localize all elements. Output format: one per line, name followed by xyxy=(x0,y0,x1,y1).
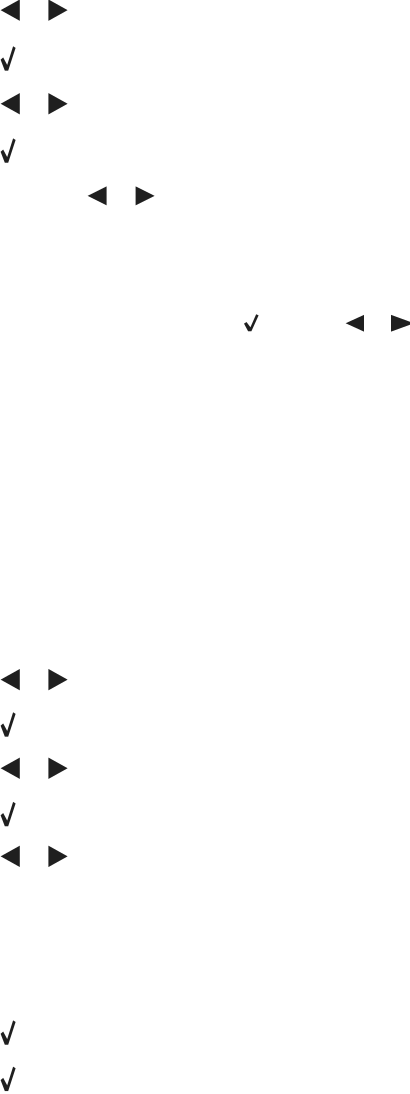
button[interactable]: Previous or next xyxy=(0,78,410,122)
button[interactable]: Step backward or forward xyxy=(0,166,410,210)
button[interactable]: Previous or next xyxy=(0,0,410,33)
button[interactable]: Completed xyxy=(0,1052,410,1094)
button[interactable]: Confirm and navigate xyxy=(0,299,410,343)
button[interactable]: Completed xyxy=(0,122,410,166)
button[interactable]: Previous or next xyxy=(0,653,410,698)
button[interactable]: Previous or next xyxy=(0,742,410,786)
button[interactable]: Previous or next xyxy=(0,831,410,875)
button[interactable]: Completed xyxy=(0,33,410,78)
button[interactable]: Completed xyxy=(0,1008,410,1052)
button[interactable]: Completed xyxy=(0,698,410,742)
button[interactable]: Completed xyxy=(0,786,410,831)
